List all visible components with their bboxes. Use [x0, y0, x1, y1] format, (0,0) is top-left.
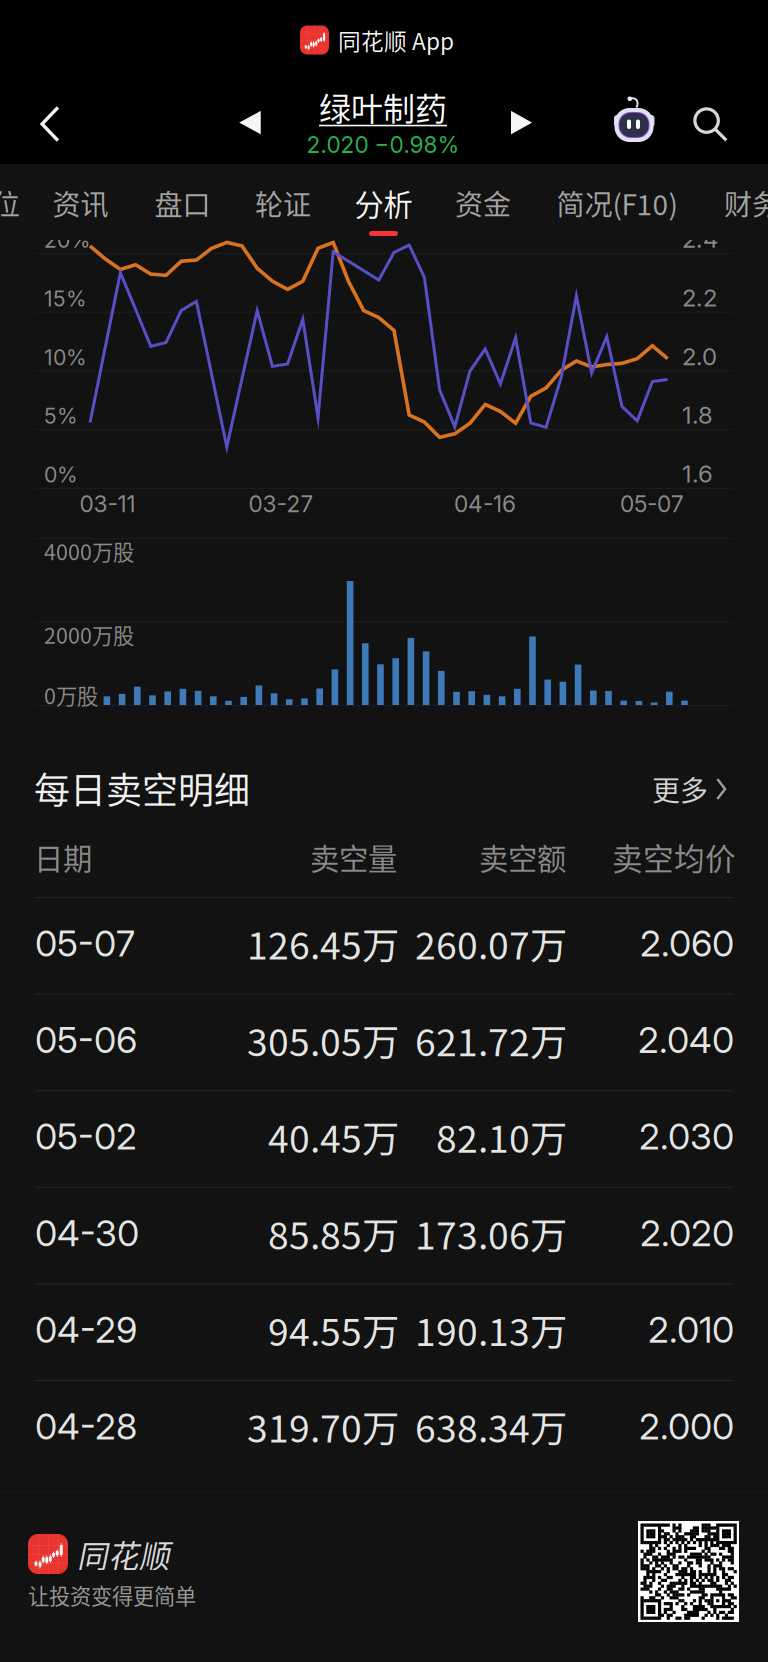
- staticText: 资讯: [52, 183, 108, 223]
- button[interactable]: 分析: [308, 167, 458, 239]
- button[interactable]: 05-07: [0, 895, 768, 992]
- button[interactable]: Previous stock: [219, 92, 281, 154]
- button[interactable]: Search: [676, 90, 744, 158]
- staticText: 638.34万: [415, 1399, 567, 1453]
- staticText: 2.0: [682, 342, 717, 371]
- button[interactable]: 04-30: [0, 1185, 768, 1281]
- staticText: 绿叶制药: [319, 84, 447, 130]
- button[interactable]: 财务: [677, 167, 768, 239]
- staticText: 资金: [455, 183, 511, 223]
- staticText: 260.07万: [415, 916, 567, 970]
- button[interactable]: Back: [11, 85, 89, 163]
- staticText: 2.040: [638, 1018, 734, 1062]
- staticText: 2.010: [648, 1308, 734, 1351]
- staticText: 日期: [34, 836, 92, 878]
- staticText: 05-07: [35, 921, 135, 965]
- staticText: 2.2: [682, 283, 717, 312]
- staticText: 10%: [44, 344, 87, 370]
- staticText: 5%: [44, 403, 78, 429]
- staticText: 2.030: [639, 1115, 734, 1158]
- staticText: 04-29: [35, 1308, 137, 1351]
- staticText: 财务: [724, 183, 768, 223]
- staticText: 1.6: [682, 459, 713, 488]
- staticText: 126.45万: [247, 916, 399, 970]
- staticText: 305.05万: [247, 1013, 399, 1067]
- staticText: 319.70万: [247, 1399, 399, 1453]
- staticText: 20%: [44, 227, 91, 253]
- button[interactable]: 资金: [408, 167, 558, 239]
- staticText: 4000万股: [44, 536, 134, 566]
- staticText: 轮证: [255, 183, 311, 223]
- staticText: 同花顺 App: [338, 24, 454, 56]
- staticText: 621.72万: [415, 1013, 567, 1067]
- button[interactable]: 简况(F10): [542, 167, 692, 239]
- staticText: 04-30: [35, 1211, 139, 1255]
- staticText: 190.13万: [415, 1303, 567, 1357]
- button[interactable]: 04-29: [0, 1281, 768, 1378]
- staticText: 05-07: [620, 490, 684, 518]
- staticText: 173.06万: [415, 1206, 567, 1260]
- button[interactable]: 更多: [597, 761, 727, 817]
- button[interactable]: AI assistant: [602, 88, 666, 152]
- staticText: 15%: [44, 286, 87, 312]
- button[interactable]: Next stock: [490, 92, 552, 154]
- staticText: 让投资变得更简单: [28, 1580, 196, 1610]
- staticText: 仓位: [0, 183, 20, 223]
- staticText: 同花顺: [77, 1532, 170, 1576]
- staticText: 0万股: [44, 680, 98, 710]
- staticText: 简况(F10): [556, 183, 677, 223]
- button[interactable]: 05-06: [0, 992, 768, 1088]
- staticText: 2.020: [640, 1211, 734, 1255]
- staticText: 40.45万: [268, 1109, 399, 1164]
- staticText: 04-16: [454, 490, 516, 518]
- staticText: 94.55万: [268, 1303, 399, 1357]
- staticText: 更多: [652, 769, 708, 809]
- button[interactable]: 同花顺 App: [300, 14, 470, 66]
- button[interactable]: 轮证: [208, 167, 358, 239]
- staticText: 2.060: [640, 921, 734, 965]
- button[interactable]: 绿叶制药: [263, 84, 503, 158]
- button[interactable]: 资讯: [5, 167, 155, 239]
- staticText: 卖空额: [479, 836, 566, 878]
- staticText: 85.85万: [268, 1206, 399, 1260]
- staticText: 每日卖空明细: [34, 762, 250, 814]
- staticText: 03-27: [248, 490, 313, 518]
- staticText: 82.10万: [436, 1109, 567, 1164]
- staticText: 卖空均价: [612, 835, 736, 879]
- staticText: 2.000: [639, 1404, 734, 1448]
- staticText: 卖空量: [310, 836, 397, 878]
- staticText: 分析: [354, 182, 412, 224]
- button[interactable]: 盘口: [107, 167, 257, 239]
- button[interactable]: 05-02: [0, 1088, 768, 1185]
- staticText: 2.020 −0.98%: [306, 131, 459, 158]
- staticText: 2.4: [682, 224, 718, 253]
- staticText: 03-11: [79, 490, 135, 518]
- button[interactable]: 仓位: [0, 167, 67, 239]
- staticText: 04-28: [35, 1404, 137, 1448]
- staticText: 2000万股: [44, 619, 134, 650]
- staticText: 05-06: [35, 1018, 137, 1062]
- staticText: 05-02: [35, 1115, 137, 1158]
- staticText: 0%: [44, 462, 78, 488]
- button[interactable]: 04-28: [0, 1378, 768, 1475]
- staticText: 盘口: [154, 183, 210, 223]
- staticText: 1.8: [682, 401, 713, 430]
